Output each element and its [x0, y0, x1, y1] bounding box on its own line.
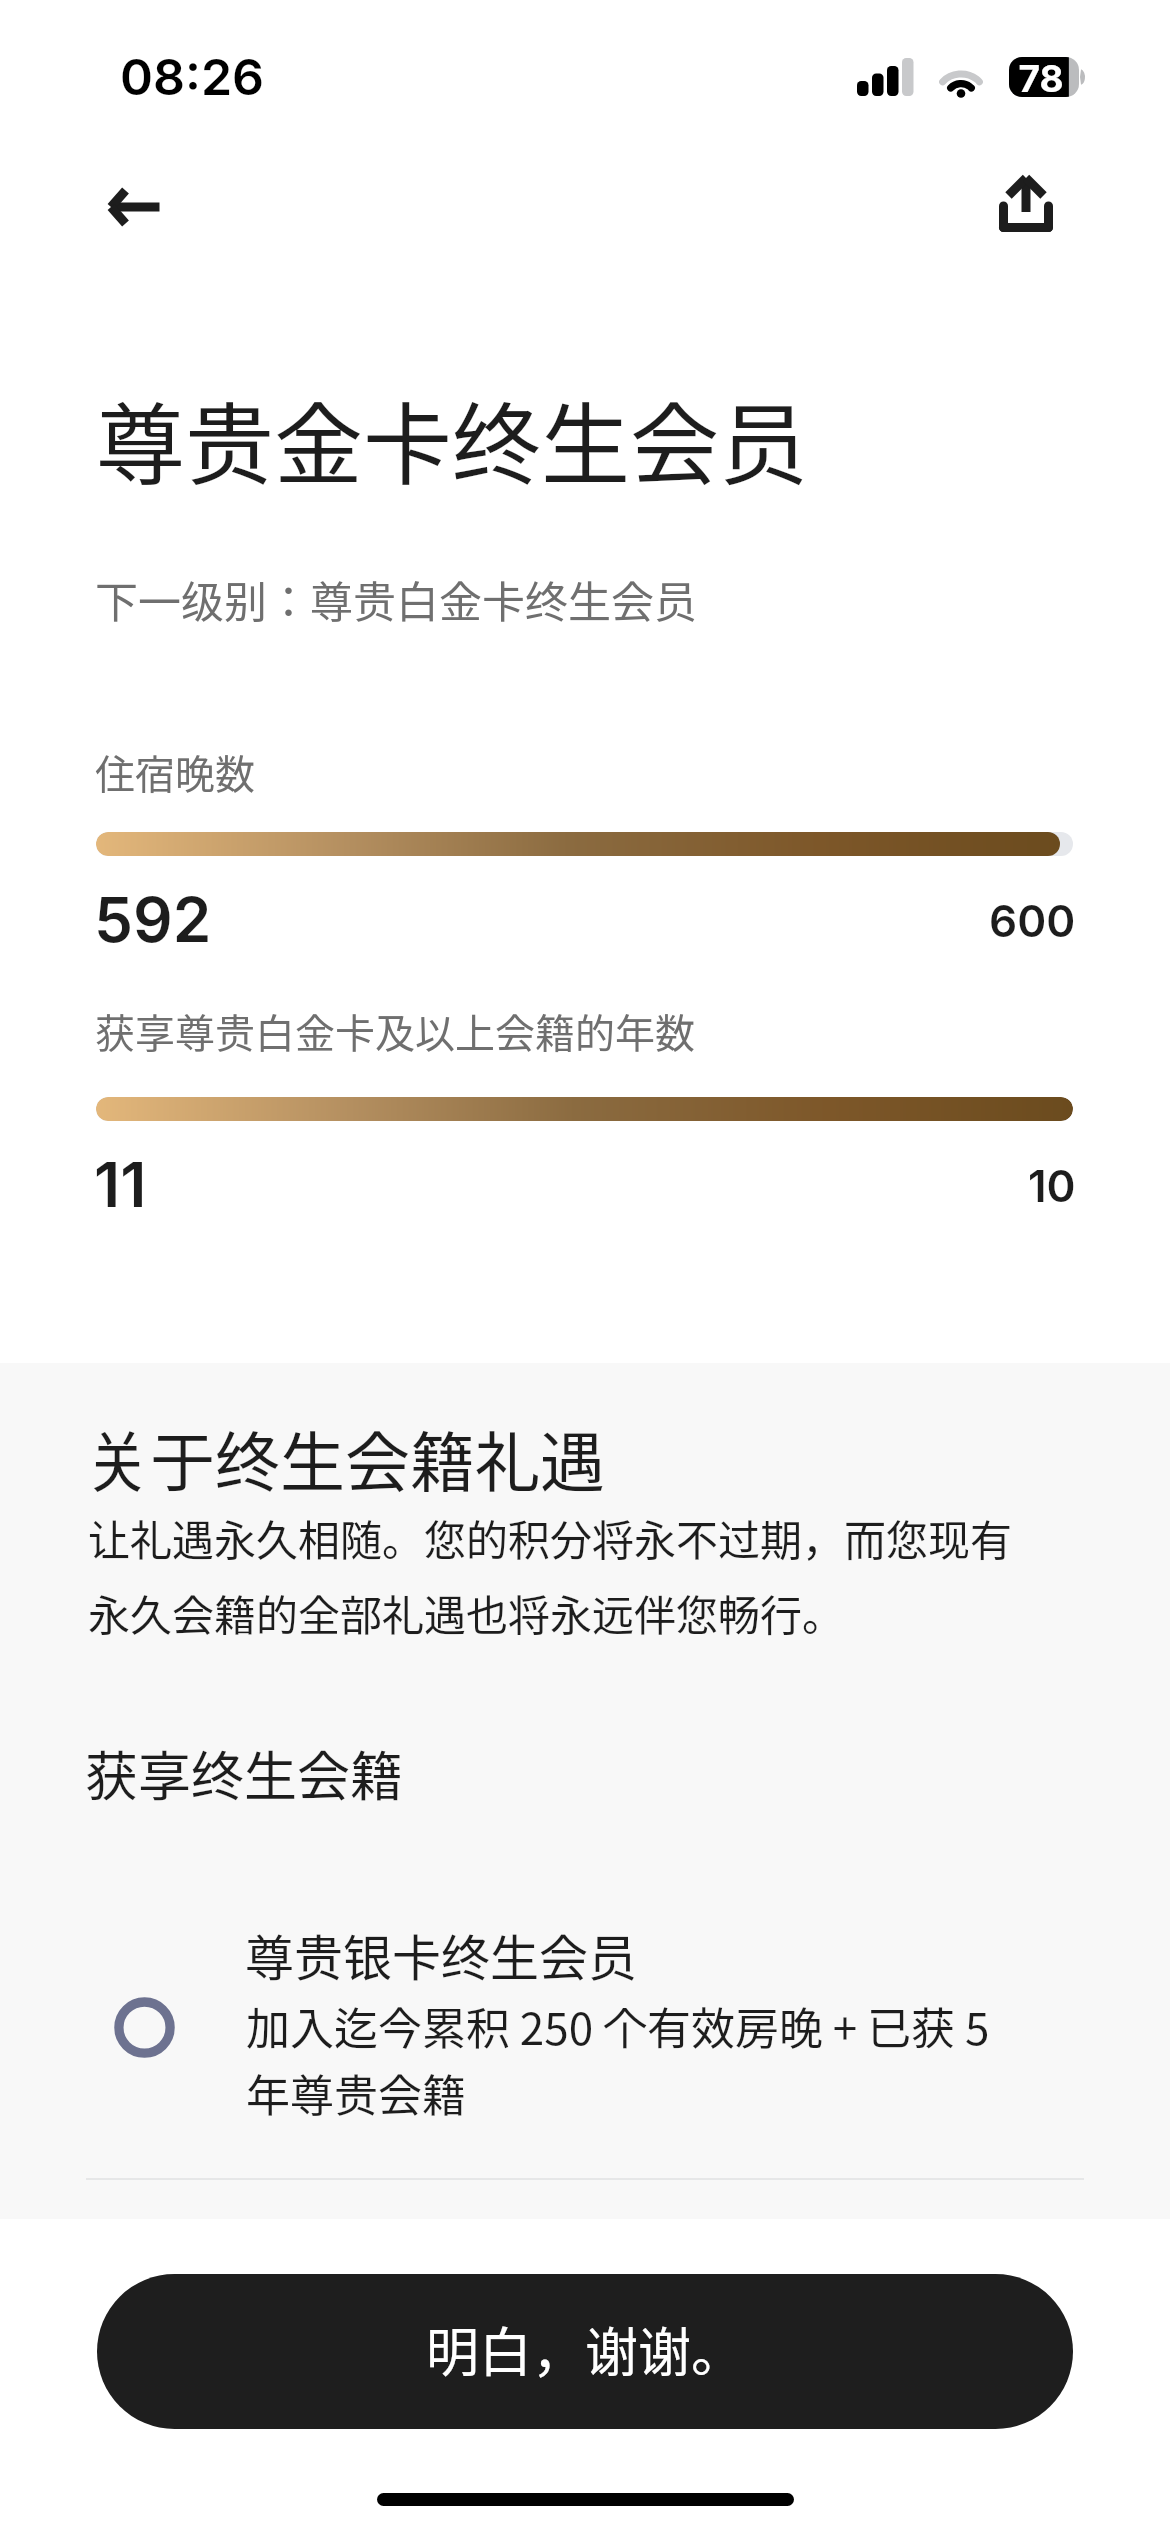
staticText: 让礼遇永久相随。您的积分将永不过期，而您现有永久会籍的全部礼遇也将永远伴您畅行。	[88, 1507, 1033, 1643]
staticText: 08:26	[120, 47, 265, 107]
staticText: 592	[94, 882, 212, 957]
button[interactable]: Share	[971, 149, 1081, 259]
staticText: 明白，谢谢。	[426, 2311, 744, 2388]
button[interactable]: 明白，谢谢。	[97, 2274, 1073, 2429]
staticText: 获享尊贵白金卡及以上会籍的年数	[95, 1002, 695, 1060]
staticText: 关于终生会籍礼遇	[85, 1411, 606, 1505]
staticText: 600	[989, 894, 1076, 947]
button[interactable]: Back	[78, 152, 188, 262]
staticText: 加入迄今累积 250 个有效房晚 + 已获 5 年尊贵会籍	[246, 1994, 1006, 2124]
staticText: 11	[94, 1147, 147, 1222]
button[interactable]: 尊贵银卡终生会员	[0, 1900, 1170, 2150]
staticText: 获享终生会籍	[85, 1735, 403, 1812]
staticText: 住宿晚数	[95, 743, 255, 801]
staticText: 10	[1028, 1159, 1076, 1212]
staticText: 下一级别：尊贵白金卡终生会员	[95, 568, 697, 630]
staticText: 尊贵银卡终生会员	[245, 1919, 638, 1990]
staticText: 尊贵金卡终生会员	[96, 374, 808, 503]
staticText: 78	[1018, 57, 1064, 96]
